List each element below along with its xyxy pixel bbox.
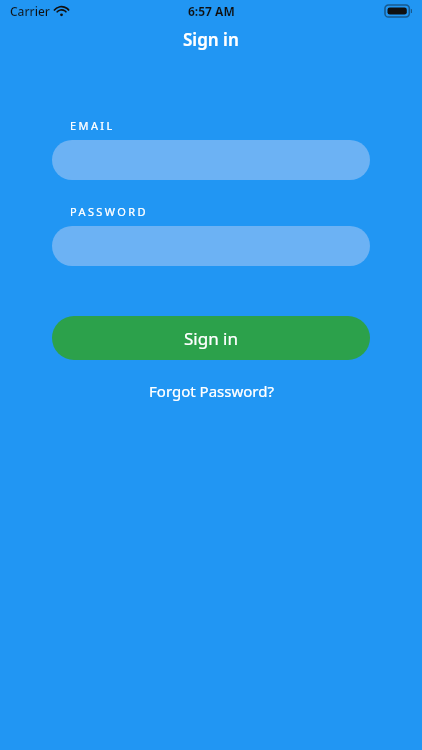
button[interactable]: Text input field — [52, 140, 370, 180]
button[interactable]: Sign in — [52, 316, 370, 360]
staticText: Sign in — [183, 28, 239, 51]
staticText: 6:57 AM — [188, 3, 235, 19]
button[interactable]: Forgot Password? — [0, 378, 422, 404]
staticText: EMAIL — [70, 118, 115, 133]
staticText: Forgot Password? — [149, 381, 274, 401]
staticText: Sign in — [184, 327, 238, 350]
staticText: Carrier — [10, 3, 50, 19]
button[interactable]: Text input field — [52, 226, 370, 266]
staticText: PASSWORD — [70, 204, 148, 219]
